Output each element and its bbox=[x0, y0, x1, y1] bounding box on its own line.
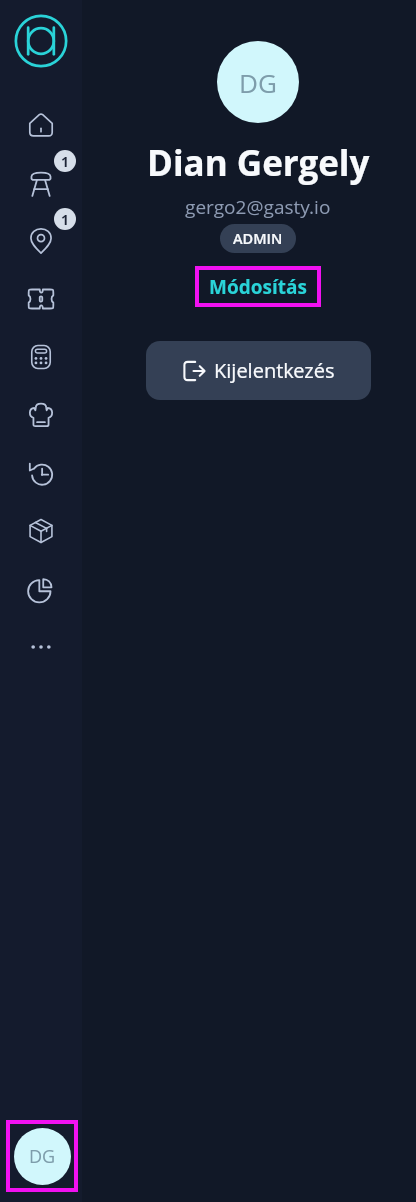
button[interactable]: History bbox=[12, 444, 70, 502]
button[interactable]: Locations bbox=[12, 212, 70, 270]
staticText: Módosítás bbox=[209, 274, 307, 300]
button[interactable]: Reports bbox=[12, 560, 70, 618]
staticText: gergo2@gasty.io bbox=[185, 194, 331, 220]
button[interactable]: Tickets bbox=[12, 270, 70, 328]
button[interactable]: More bbox=[12, 618, 70, 676]
staticText: DG bbox=[239, 65, 277, 100]
button[interactable]: Profile bbox=[6, 1120, 78, 1192]
staticText: DG bbox=[29, 1144, 56, 1169]
staticText: ADMIN bbox=[233, 229, 283, 249]
button[interactable]: Kitchen bbox=[12, 386, 70, 444]
staticText: Dian Gergely bbox=[147, 139, 370, 187]
staticText: Kijelentkezés bbox=[214, 357, 335, 384]
button[interactable]: Calculator bbox=[12, 328, 70, 386]
button[interactable]: Gasty home bbox=[12, 12, 70, 70]
button[interactable]: Inventory bbox=[12, 502, 70, 560]
button[interactable]: Tables bbox=[12, 154, 70, 212]
button[interactable]: Kijelentkezés bbox=[146, 341, 371, 400]
button[interactable]: Home bbox=[12, 96, 70, 154]
staticText: 1 bbox=[61, 210, 69, 229]
button[interactable]: Módosítás bbox=[195, 266, 321, 307]
staticText: 1 bbox=[61, 152, 69, 171]
